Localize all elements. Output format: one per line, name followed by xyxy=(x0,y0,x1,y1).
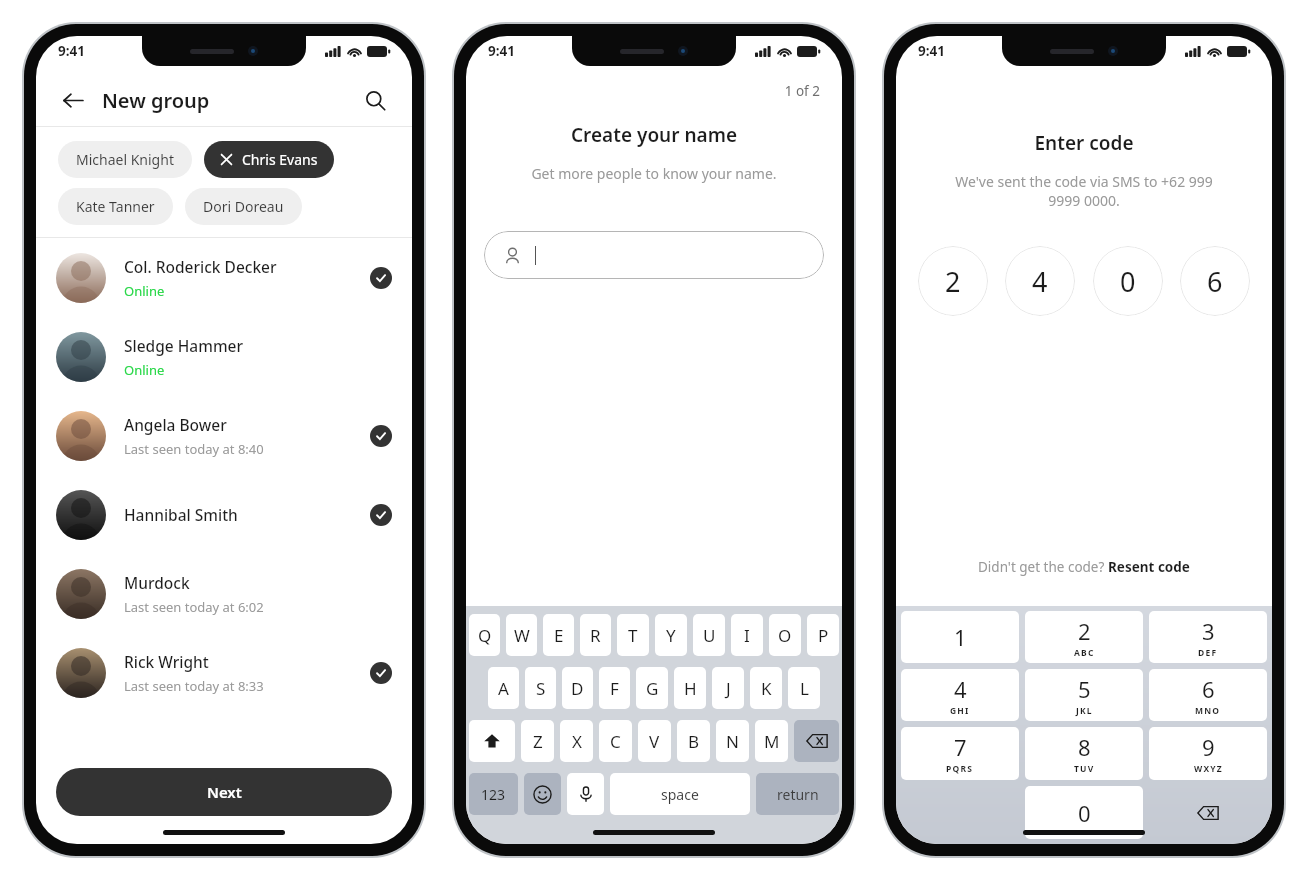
button[interactable]: Shift xyxy=(469,720,515,762)
button[interactable]: 4 xyxy=(1005,246,1075,316)
button[interactable]: I xyxy=(731,614,763,656)
staticText: Z xyxy=(533,730,543,753)
button[interactable]: Angela Bower xyxy=(36,396,412,475)
button[interactable]: Next xyxy=(56,768,392,816)
button[interactable]: Search xyxy=(358,83,392,117)
staticText: T xyxy=(628,624,638,647)
button[interactable]: K xyxy=(750,667,782,709)
button[interactable]: P xyxy=(807,614,839,656)
staticText: MNO xyxy=(1195,705,1221,717)
button[interactable]: X xyxy=(560,720,593,762)
staticText: C xyxy=(610,730,621,753)
button[interactable]: L xyxy=(788,667,820,709)
staticText: Michael Knight xyxy=(76,150,174,169)
staticText: WXYZ xyxy=(1194,763,1223,775)
staticText: V xyxy=(649,730,660,753)
staticText: S xyxy=(536,677,546,700)
button[interactable]: Sledge Hammer xyxy=(36,317,412,396)
button[interactable]: Emoji xyxy=(524,773,561,815)
button[interactable]: Dictate xyxy=(567,773,604,815)
button[interactable]: N xyxy=(716,720,749,762)
button[interactable]: 2 xyxy=(1025,611,1143,663)
button[interactable]: Backspace xyxy=(1149,786,1267,839)
button[interactable]: E xyxy=(543,614,574,656)
button[interactable]: Q xyxy=(469,614,500,656)
staticText: H xyxy=(684,677,697,700)
button[interactable]: space xyxy=(610,773,750,815)
button[interactable]: Murdock xyxy=(36,554,412,633)
staticText: 6 xyxy=(1207,263,1223,300)
button[interactable]: Kate Tanner xyxy=(58,188,173,225)
button[interactable]: 4 xyxy=(901,669,1019,721)
staticText: L xyxy=(800,677,809,700)
staticText: 6 xyxy=(1202,674,1215,704)
button[interactable]: C xyxy=(599,720,632,762)
button[interactable]: M xyxy=(755,720,788,762)
staticText: Next xyxy=(207,782,242,802)
staticText: Last seen today at 8:40 xyxy=(124,440,264,458)
staticText: New group xyxy=(102,87,210,114)
staticText: Last seen today at 6:02 xyxy=(124,598,264,616)
staticText: 1 xyxy=(954,622,967,652)
button[interactable]: V xyxy=(638,720,671,762)
button[interactable]: 1 xyxy=(901,611,1019,663)
button[interactable]: Backspace xyxy=(794,720,839,762)
staticText: Enter code xyxy=(896,130,1272,156)
staticText: DEF xyxy=(1198,647,1218,659)
button[interactable]: 8 xyxy=(1025,727,1143,780)
button[interactable]: 0 xyxy=(1093,246,1163,316)
button[interactable]: Numbers xyxy=(469,773,518,815)
button[interactable]: 6 xyxy=(1149,669,1267,721)
button[interactable]: R xyxy=(580,614,611,656)
button[interactable]: Chris Evans xyxy=(204,141,334,178)
staticText: W xyxy=(514,624,530,647)
staticText: X xyxy=(572,730,582,753)
button[interactable]: 3 xyxy=(1149,611,1267,663)
button[interactable]: Michael Knight xyxy=(58,141,192,178)
staticText: P xyxy=(818,624,829,647)
staticText: 0 xyxy=(1078,798,1091,828)
button[interactable]: Resent code xyxy=(1108,558,1190,576)
button[interactable]: 7 xyxy=(901,727,1019,780)
button[interactable]: D xyxy=(562,667,593,709)
button[interactable]: 2 xyxy=(918,246,988,316)
staticText: N xyxy=(726,730,739,753)
staticText: 4 xyxy=(1032,263,1048,300)
staticText: Y xyxy=(666,624,676,647)
button[interactable]: Col. Roderick Decker xyxy=(36,238,412,317)
button[interactable] xyxy=(484,231,824,279)
staticText: Col. Roderick Decker xyxy=(124,256,277,277)
button[interactable]: J xyxy=(712,667,744,709)
button[interactable]: Z xyxy=(521,720,554,762)
button[interactable]: G xyxy=(636,667,668,709)
staticText: 9 xyxy=(1202,732,1215,762)
button[interactable]: B xyxy=(677,720,710,762)
staticText: 9:41 xyxy=(58,42,85,60)
button[interactable]: 0 xyxy=(1025,786,1143,839)
staticText: I xyxy=(744,624,750,647)
button[interactable]: W xyxy=(506,614,537,656)
staticText: Didn't get the code? xyxy=(978,558,1108,576)
button[interactable]: Y xyxy=(655,614,687,656)
button[interactable]: U xyxy=(693,614,725,656)
staticText: space xyxy=(661,785,699,804)
button[interactable]: O xyxy=(769,614,801,656)
button[interactable]: 9 xyxy=(1149,727,1267,780)
button[interactable]: S xyxy=(525,667,556,709)
button[interactable]: Rick Wright xyxy=(36,633,412,712)
button[interactable]: Hannibal Smith xyxy=(36,475,412,554)
button[interactable]: 6 xyxy=(1180,246,1250,316)
button[interactable]: A xyxy=(488,667,519,709)
button[interactable]: Dori Doreau xyxy=(185,188,302,225)
staticText: 8 xyxy=(1078,732,1091,762)
staticText: Chris Evans xyxy=(242,150,318,169)
button[interactable]: T xyxy=(617,614,649,656)
button[interactable]: 5 xyxy=(1025,669,1143,721)
button[interactable]: Back xyxy=(56,83,90,117)
button[interactable]: H xyxy=(674,667,706,709)
button[interactable]: F xyxy=(599,667,630,709)
staticText: Sledge Hammer xyxy=(124,335,244,356)
staticText: 7 xyxy=(954,732,967,762)
button[interactable]: return xyxy=(756,773,839,815)
staticText: PQRS xyxy=(946,763,974,775)
